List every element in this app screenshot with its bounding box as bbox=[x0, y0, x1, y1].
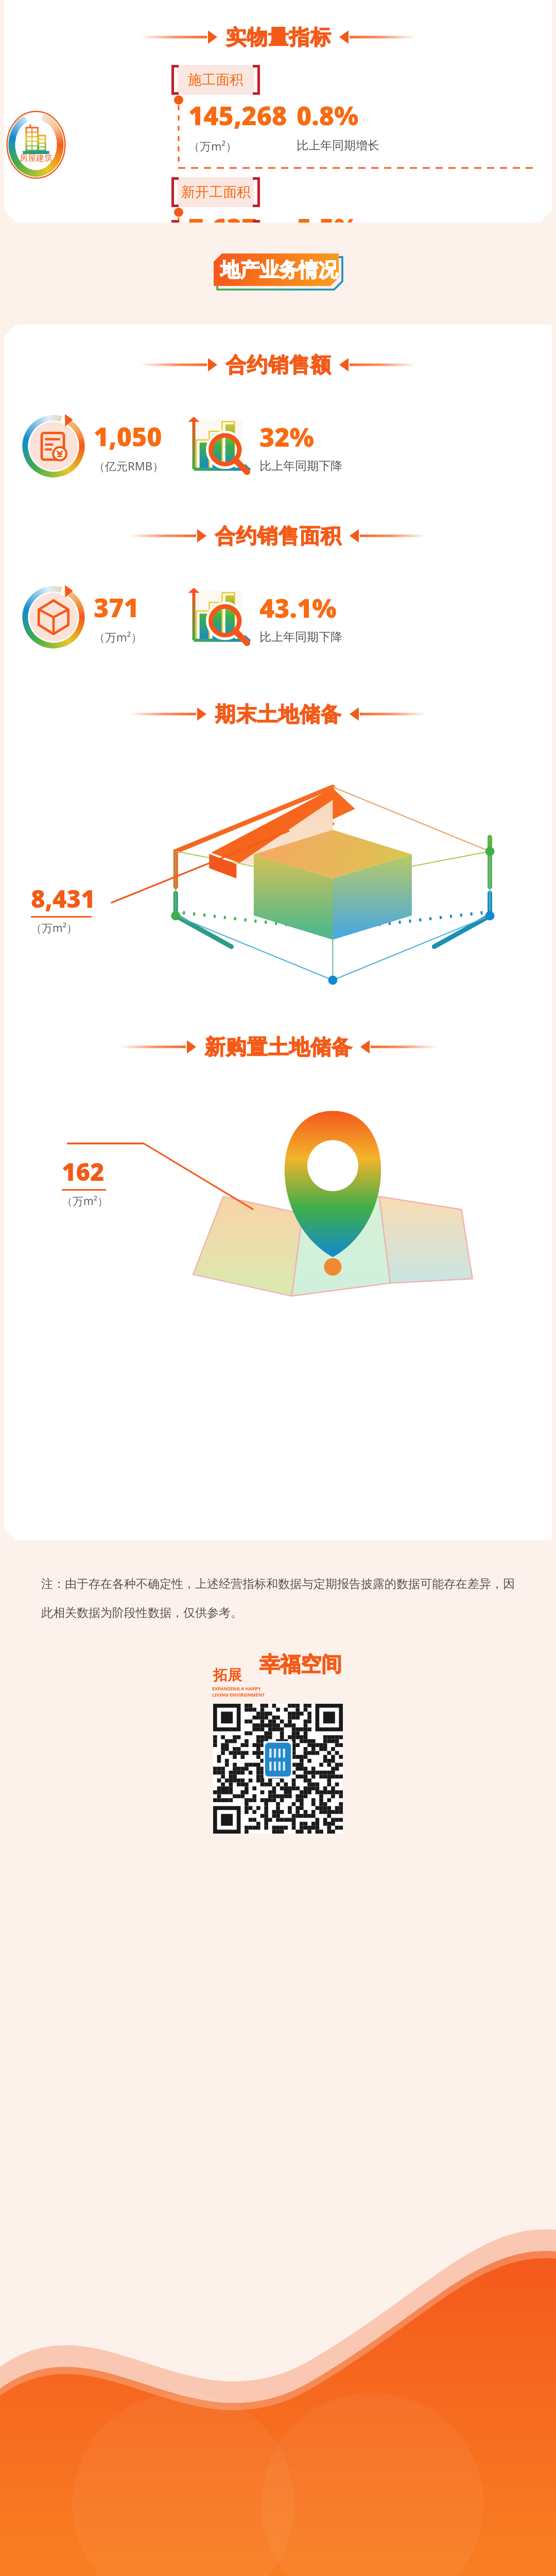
button[interactable]: 合约销售额 bbox=[4, 413, 552, 479]
staticText: 162 bbox=[62, 1155, 105, 1188]
button[interactable]: 地产业务情况 bbox=[214, 253, 342, 290]
button[interactable]: 合约销售面积 bbox=[4, 584, 552, 650]
staticText: 1,050 bbox=[94, 419, 162, 454]
button[interactable]: 施工面积 bbox=[4, 65, 552, 169]
staticText: LIVING ENVIRONMENT bbox=[212, 1691, 265, 1698]
staticText: 43.1% bbox=[259, 590, 337, 625]
staticText: （万m²） bbox=[31, 921, 77, 936]
other: 合约销售面积 bbox=[21, 584, 86, 650]
staticText: 5.5% bbox=[297, 210, 359, 223]
staticText: 新购置土地储备 bbox=[204, 1034, 352, 1060]
staticText: 期末土地储备 bbox=[215, 701, 341, 727]
staticText: 房屋建筑 bbox=[20, 153, 53, 163]
staticText: （万m²） bbox=[188, 138, 237, 154]
staticText: （万m²） bbox=[94, 629, 143, 645]
staticText: 7,637 bbox=[188, 210, 257, 223]
staticText: 新开工面积 bbox=[181, 183, 251, 201]
staticText: （万m²） bbox=[62, 1194, 108, 1209]
button[interactable]: 新开工面积 bbox=[4, 177, 552, 223]
button[interactable]: 二维码 bbox=[213, 1704, 343, 1834]
staticText: 实物量指标 bbox=[225, 24, 331, 50]
staticText: （亿元RMB） bbox=[94, 458, 164, 473]
staticText: 比上年同期下降 bbox=[259, 630, 342, 645]
other: 房屋建筑 bbox=[7, 112, 65, 177]
other: 拓展幸福空间 bbox=[211, 1651, 345, 1699]
staticText: 32% bbox=[259, 419, 314, 454]
other: 合约销售额 bbox=[21, 413, 86, 479]
staticText: EXPANDING A HAPPY bbox=[212, 1685, 261, 1691]
staticText: 施工面积 bbox=[188, 71, 244, 89]
staticText: 注：由于存在各种不确定性，上述经营指标和数据与定期报告披露的数据可能存在差异，因… bbox=[41, 1577, 515, 1620]
staticText: 0.8% bbox=[297, 98, 359, 133]
staticText: 371 bbox=[94, 590, 139, 625]
staticText: 幸福空间 bbox=[259, 1651, 342, 1677]
staticText: 8,431 bbox=[31, 882, 95, 915]
staticText: 拓展 bbox=[213, 1666, 242, 1684]
staticText: 比上年同期下降 bbox=[259, 459, 342, 473]
staticText: 比上年同期增长 bbox=[297, 138, 379, 153]
staticText: 合约销售额 bbox=[225, 352, 331, 378]
staticText: 145,268 bbox=[188, 98, 287, 133]
staticText: 合约销售面积 bbox=[215, 523, 341, 549]
staticText: 地产业务情况 bbox=[220, 258, 338, 282]
